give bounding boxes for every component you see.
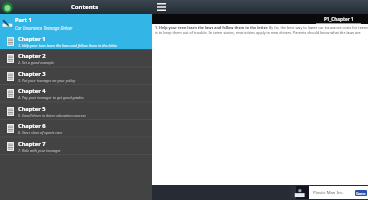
- staticText: Chapter 2: [18, 52, 46, 60]
- staticText: Chapter 1: [18, 35, 46, 43]
- button[interactable]: Menu: [153, 0, 169, 14]
- button[interactable]: Part 1: [0, 14, 152, 33]
- staticText: 7. Ride with your teenager: [18, 148, 61, 153]
- staticText: 3. Put your teenager on your policy: [18, 78, 76, 83]
- staticText: 1. Help your teen learn the laws and fol…: [155, 25, 368, 35]
- button[interactable]: Chapter 1: [0, 33, 152, 51]
- button[interactable]: Chapter 7: [0, 138, 152, 156]
- button[interactable]: Chapter 6: [0, 120, 152, 138]
- staticText: Chapter 6: [18, 122, 46, 130]
- staticText: P1_Chapter 1: [324, 16, 354, 22]
- button[interactable]: P1_Chapter 1: [316, 14, 361, 24]
- staticText: 4. Pay your teenager to get good grades: [18, 95, 84, 100]
- staticText: Contents: [71, 3, 99, 11]
- staticText: Plastic Man Inc.: [313, 190, 344, 196]
- staticText: 1. Help your teen learn the laws and fol…: [18, 43, 118, 48]
- staticText: 2. Set a good example: [18, 60, 55, 65]
- staticText: Part 1: [15, 16, 32, 24]
- button[interactable]: Chapter 5: [0, 103, 152, 121]
- staticText: Chapter 4: [18, 87, 46, 95]
- staticText: 5. Enroll them in driver education cours…: [18, 113, 86, 118]
- staticText: Chapter 5: [18, 105, 46, 113]
- staticText: Game: [356, 191, 366, 196]
- button[interactable]: Chapter 3: [0, 68, 152, 86]
- button[interactable]: Chapter 4: [0, 85, 152, 103]
- staticText: 6. Steer clear of sports cars: [18, 130, 63, 135]
- button[interactable]: App icon: [2, 2, 13, 13]
- staticText: Chapter 7: [18, 140, 46, 148]
- button[interactable]: Game: [355, 190, 367, 196]
- button[interactable]: Chapter 2: [0, 50, 152, 68]
- button[interactable]: Plastic Man Inc.: [290, 186, 368, 199]
- staticText: Chapter 3: [18, 70, 46, 78]
- staticText: Car Insurance Teenage Driver: [15, 25, 73, 31]
